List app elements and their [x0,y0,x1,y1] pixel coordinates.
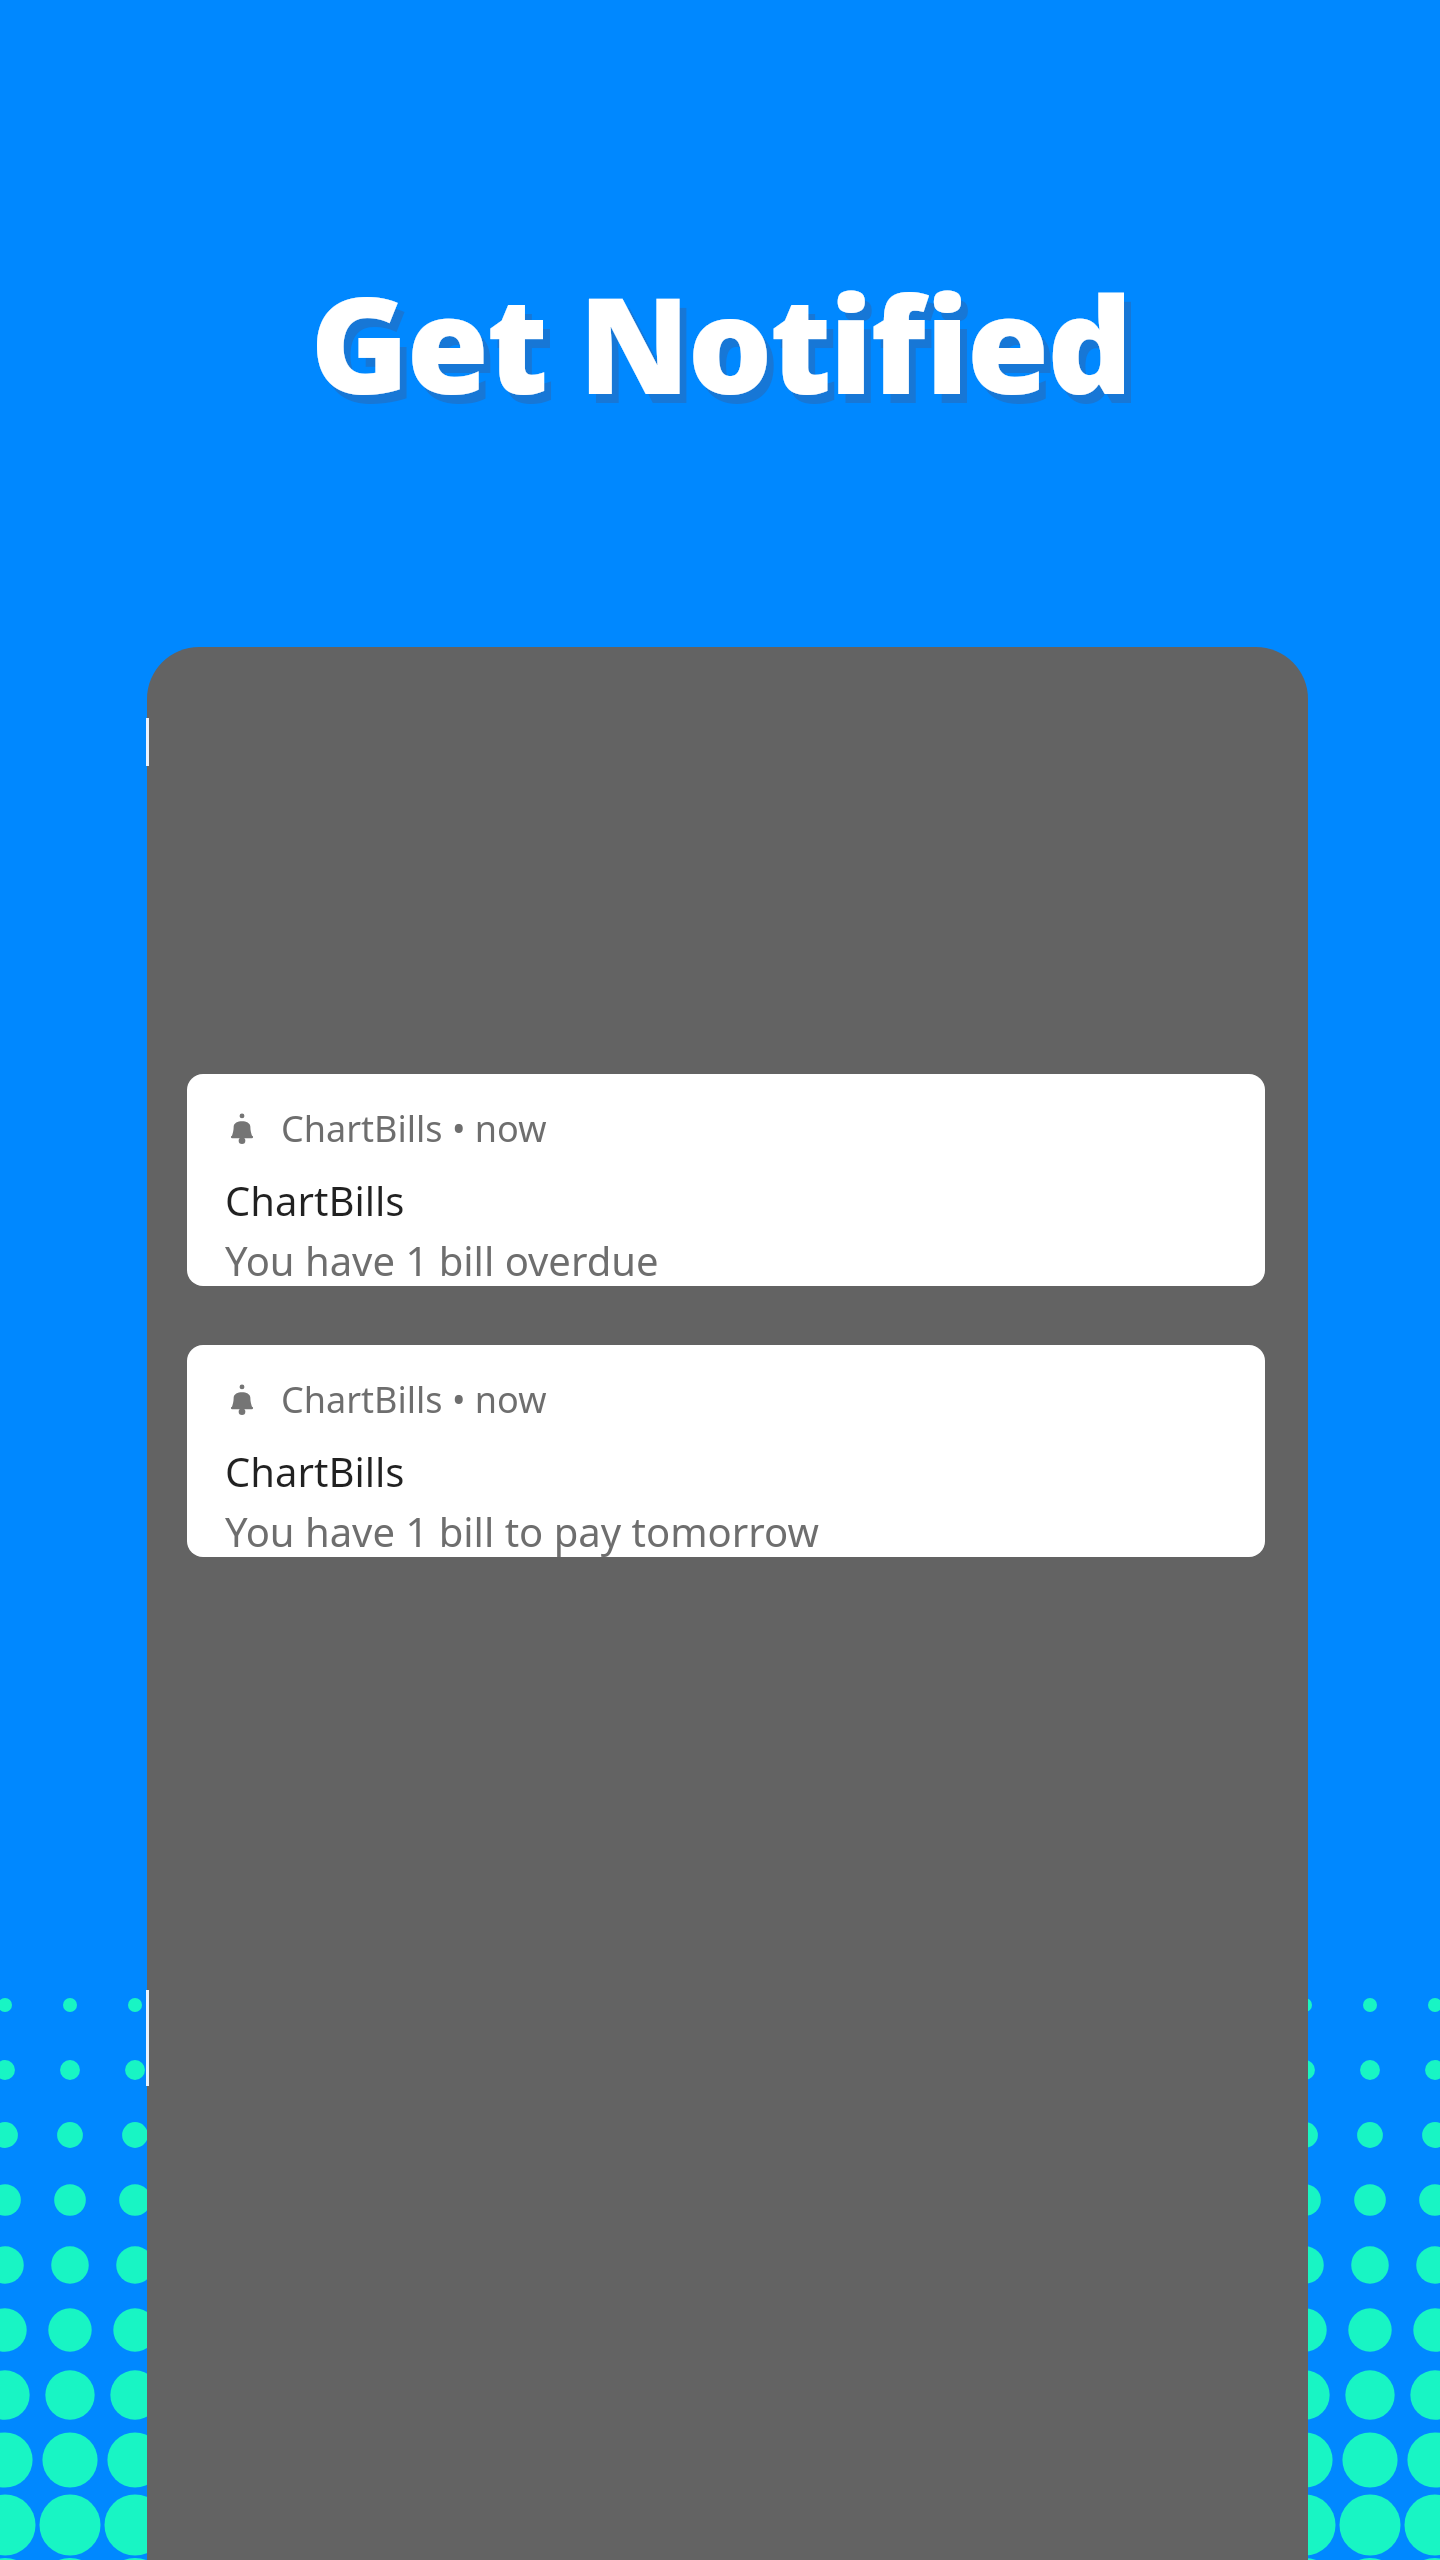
button[interactable]: Notification [187,1074,1265,1286]
staticText: Get Notified [310,252,1131,433]
button[interactable]: Notification [187,1345,1265,1557]
staticText: ChartBills [225,1173,405,1227]
other: Notification [225,1383,259,1417]
staticText: Get Notified [317,261,1138,442]
staticText: ChartBills • now [281,1104,547,1153]
staticText: You have 1 bill overdue [225,1233,659,1286]
staticText: You have 1 bill to pay tomorrow [225,1504,819,1557]
staticText: ChartBills [225,1444,405,1498]
other: Notification [225,1112,259,1146]
staticText: ChartBills • now [281,1375,547,1424]
